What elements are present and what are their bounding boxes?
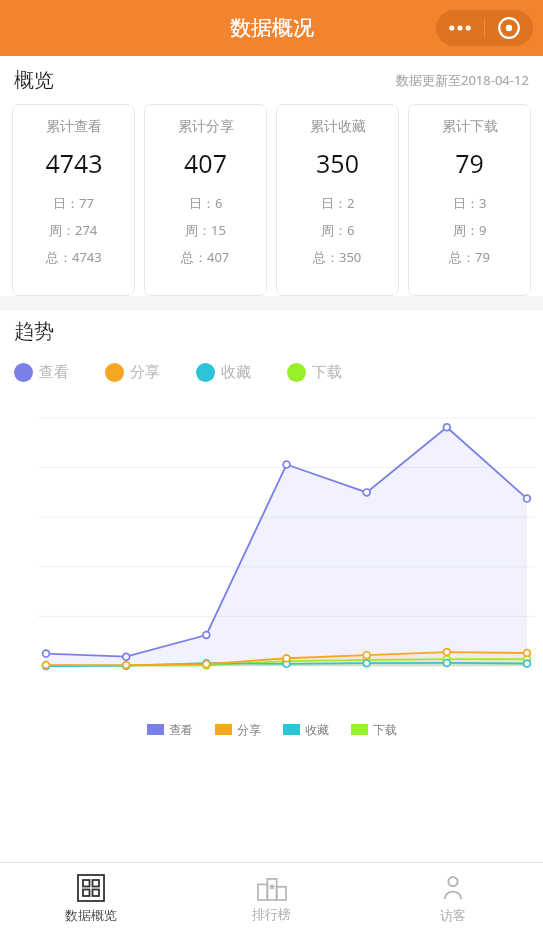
button[interactable]: Close — [485, 10, 533, 46]
staticText: 数据概览 — [65, 907, 117, 923]
staticText: 总：407 — [181, 248, 230, 266]
staticText: 累计收藏 — [310, 118, 366, 136]
staticText: 4743 — [45, 146, 103, 180]
staticText: 总：350 — [313, 248, 362, 266]
button[interactable]: 累计分享 — [144, 104, 267, 296]
button[interactable]: More — [436, 10, 484, 46]
staticText: 累计分享 — [178, 118, 234, 136]
staticText: 日：2 — [321, 194, 355, 212]
staticText: 数据概况 — [230, 15, 314, 41]
staticText: 日：6 — [189, 194, 223, 212]
staticText: 累计查看 — [46, 118, 102, 136]
staticText: 日：77 — [53, 194, 94, 212]
staticText: 79 — [455, 146, 484, 180]
staticText: 350 — [316, 146, 359, 180]
staticText: 407 — [184, 146, 227, 180]
staticText: 收藏 — [221, 363, 251, 382]
button[interactable]: 累计下载 — [408, 104, 531, 296]
staticText: 下载 — [373, 722, 397, 737]
staticText: 周：9 — [453, 221, 487, 239]
button[interactable]: 累计查看 — [12, 104, 135, 296]
staticText: 收藏 — [305, 722, 329, 737]
staticText: 数据更新至2018-04-12 — [396, 71, 529, 89]
staticText: 总：4743 — [46, 248, 102, 266]
staticText: 周：6 — [321, 221, 355, 239]
staticText: 查看 — [169, 722, 193, 737]
staticText: 查看 — [39, 363, 69, 382]
staticText: 周：274 — [49, 221, 98, 239]
staticText: 趋势 — [14, 319, 54, 344]
staticText: 下载 — [312, 363, 342, 382]
staticText: 总：79 — [449, 248, 490, 266]
button[interactable]: 数据概览 — [0, 863, 181, 935]
button[interactable]: 排行榜 — [181, 863, 362, 935]
staticText: 累计下载 — [442, 118, 498, 136]
staticText: 概览 — [14, 68, 54, 93]
button[interactable]: 累计收藏 — [276, 104, 399, 296]
staticText: 周：15 — [185, 221, 226, 239]
staticText: 访客 — [440, 907, 466, 923]
staticText: 分享 — [130, 363, 160, 382]
staticText: 排行榜 — [252, 906, 291, 922]
staticText: 日：3 — [453, 194, 487, 212]
staticText: 分享 — [237, 722, 261, 737]
button[interactable]: 访客 — [362, 863, 543, 935]
